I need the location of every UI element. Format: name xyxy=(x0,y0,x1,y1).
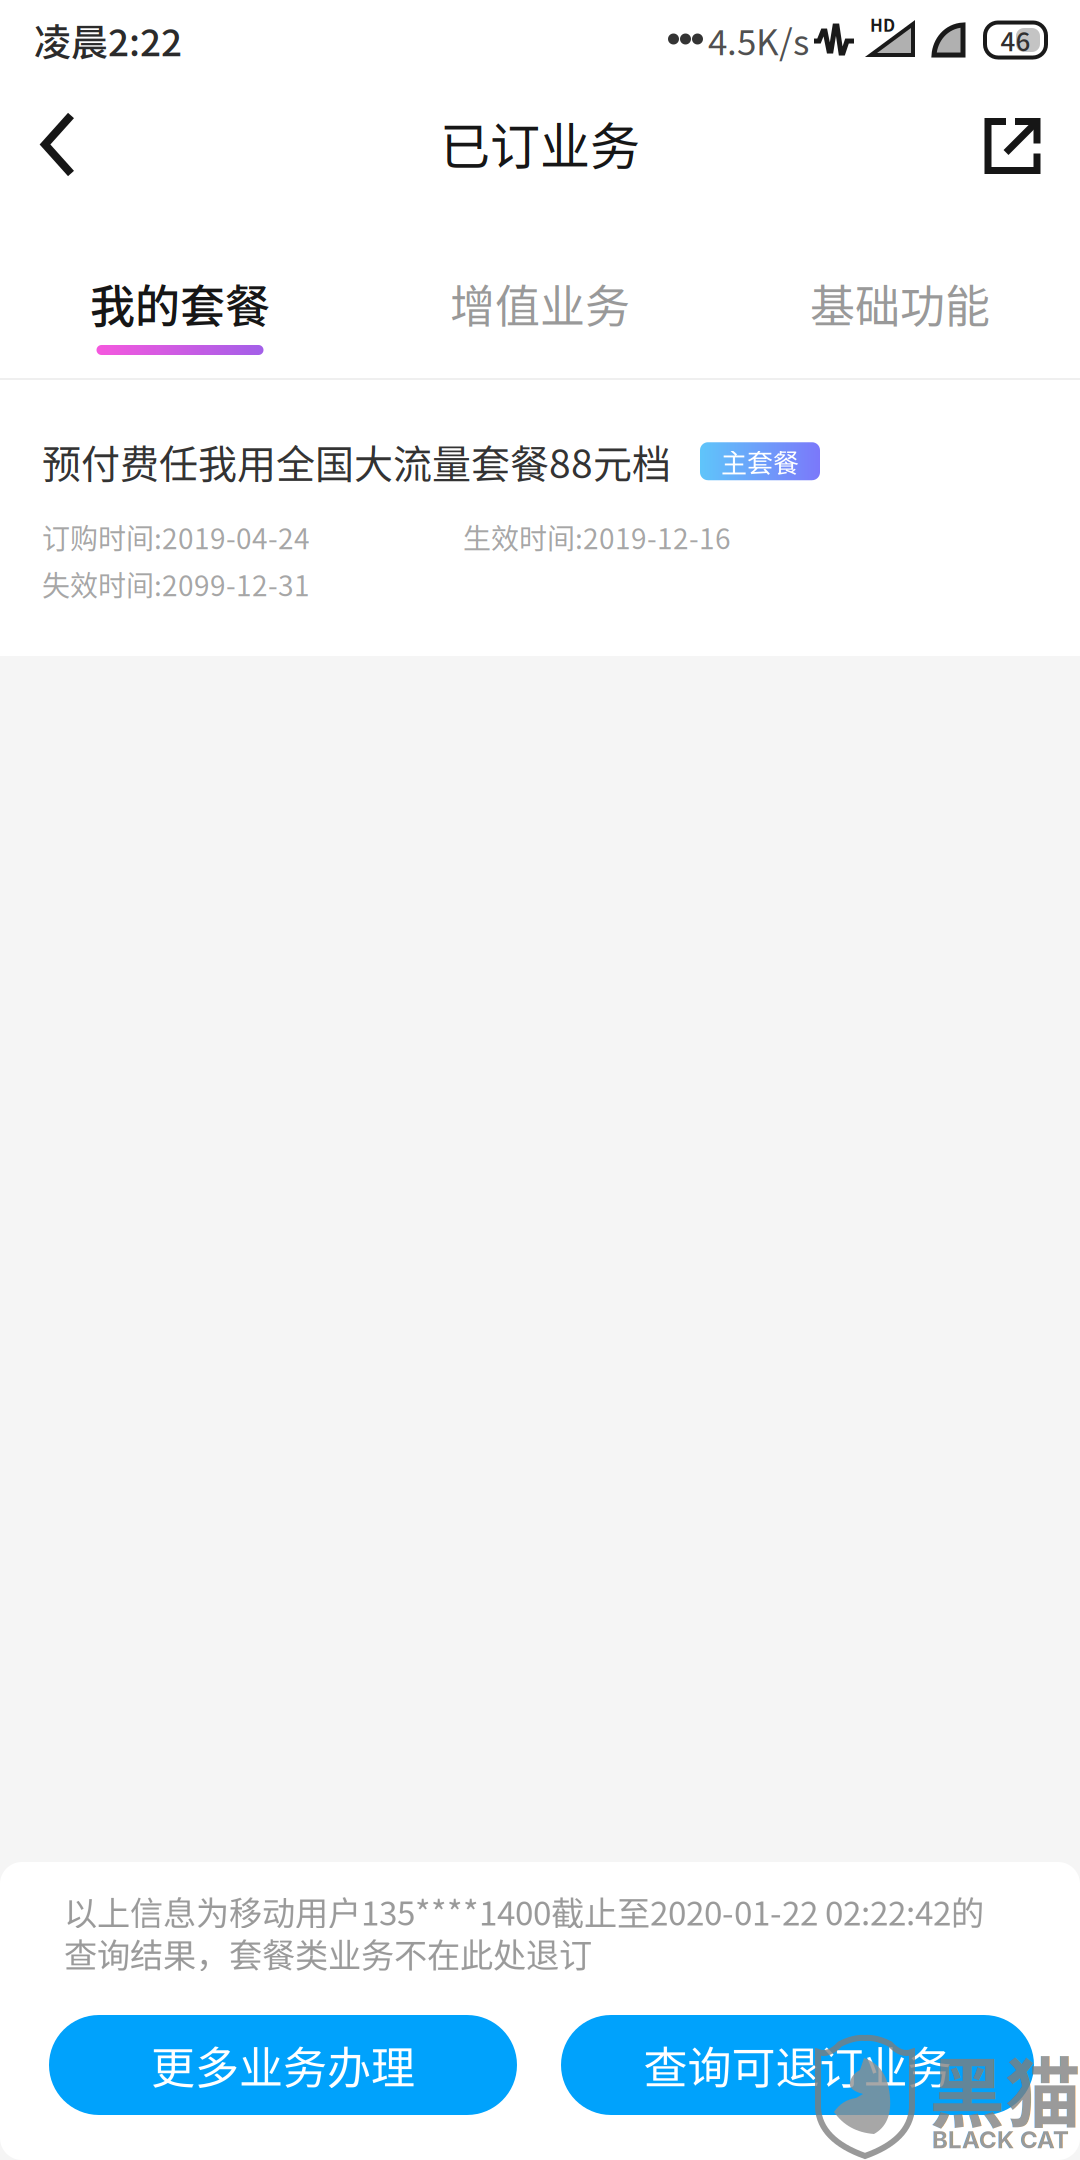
staticText: 查询结果，套餐类业务不在此处退订 xyxy=(64,1929,592,1977)
staticText: 更多业务办理 xyxy=(151,2033,415,2097)
staticText: 以上信息为移动用户135****1400截止至2020-01-22 02:22:… xyxy=(64,1887,984,1935)
staticText: 基础功能 xyxy=(810,271,990,336)
staticText: 预付费任我用全国大流量套餐88元档 xyxy=(42,433,671,489)
staticText: 4.5K/s xyxy=(708,15,809,65)
button[interactable]: 更多业务办理 xyxy=(49,2015,517,2115)
staticText: 凌晨2:22 xyxy=(34,13,182,67)
staticText: 查询可退订业务 xyxy=(643,2033,951,2097)
button[interactable]: 返回 xyxy=(0,86,117,213)
staticText: 失效时间:2099-12-31 xyxy=(42,564,310,604)
staticText: 生效时间:2019-12-16 xyxy=(463,517,731,557)
staticText: 主套餐 xyxy=(721,442,799,480)
staticText: 46 xyxy=(1000,21,1030,59)
button[interactable]: 我的套餐 xyxy=(0,220,360,378)
staticText: 我的套餐 xyxy=(90,271,270,336)
staticText: 订购时间:2019-04-24 xyxy=(42,517,310,557)
button[interactable]: 增值业务 xyxy=(360,220,720,378)
button[interactable]: 预付费任我用全国大流量套餐88元档 xyxy=(0,380,1080,656)
button[interactable]: 基础功能 xyxy=(720,220,1080,378)
staticText: 增值业务 xyxy=(450,271,630,336)
staticText: BLACK CAT xyxy=(932,2125,1069,2154)
button[interactable]: 查询可退订业务 xyxy=(561,2015,1034,2115)
staticText: 黑猫 xyxy=(929,2033,1080,2143)
staticText: 已订业务 xyxy=(440,107,640,179)
staticText: HD xyxy=(870,12,895,37)
button[interactable]: 分享 xyxy=(940,83,1080,216)
